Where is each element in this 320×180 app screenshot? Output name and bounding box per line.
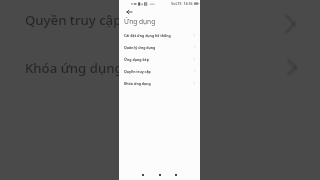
- staticText: Quản lý ứng dụng: [124, 45, 156, 50]
- button[interactable]: Recents: [171, 170, 181, 180]
- staticText: Quyền truy cập: [25, 11, 122, 29]
- staticText: Ứng dụng kép: [124, 57, 149, 62]
- button[interactable]: Quyền truy cập: [119, 65, 200, 77]
- staticText: Cài đặt ứng dụng hệ thống: [124, 33, 171, 38]
- staticText: Khóa ứng dụng: [124, 81, 151, 86]
- button[interactable]: Back: [125, 8, 134, 16]
- button[interactable]: Back: [138, 170, 148, 180]
- button[interactable]: Home: [155, 170, 165, 180]
- staticText: Ứng dụng: [124, 17, 156, 26]
- button[interactable]: Quản lý ứng dụng: [119, 41, 200, 53]
- button[interactable]: Cài đặt ứng dụng hệ thống: [119, 29, 200, 41]
- staticText: Quyền truy cập: [124, 69, 151, 74]
- button[interactable]: Khóa ứng dụng: [119, 77, 200, 89]
- staticText: Khóa ứng dụng: [25, 59, 123, 77]
- button[interactable]: Ứng dụng kép: [119, 53, 200, 65]
- staticText: VoLTE 14:36: [171, 1, 193, 6]
